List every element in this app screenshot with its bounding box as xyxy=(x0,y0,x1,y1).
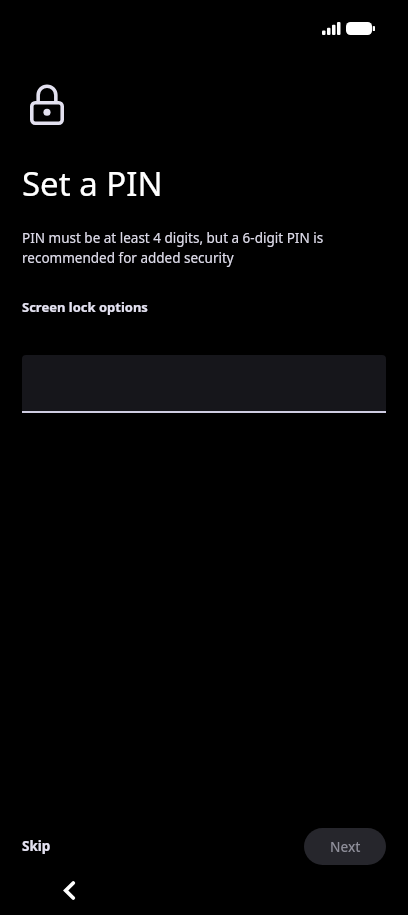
staticText: PIN must be at least 4 digits, but a 6-d… xyxy=(22,229,334,267)
button[interactable] xyxy=(22,355,386,413)
button[interactable]: Next xyxy=(304,828,386,865)
button[interactable]: Back xyxy=(52,873,86,907)
staticText: Screen lock options xyxy=(22,298,148,316)
button[interactable]: Skip xyxy=(10,828,63,864)
button[interactable]: Screen lock options xyxy=(22,294,148,320)
staticText: Set a PIN xyxy=(22,161,163,206)
staticText: Next xyxy=(330,838,361,856)
staticText: Skip xyxy=(22,837,51,855)
